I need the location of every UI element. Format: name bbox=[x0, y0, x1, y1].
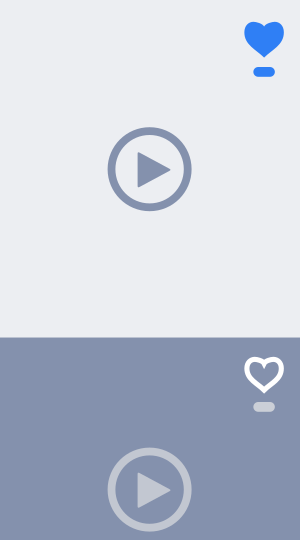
button[interactable]: Favourite bbox=[244, 22, 284, 77]
button[interactable]: Favourite bbox=[244, 357, 284, 412]
button[interactable]: Play bbox=[108, 448, 192, 532]
button[interactable]: Play bbox=[108, 127, 192, 211]
